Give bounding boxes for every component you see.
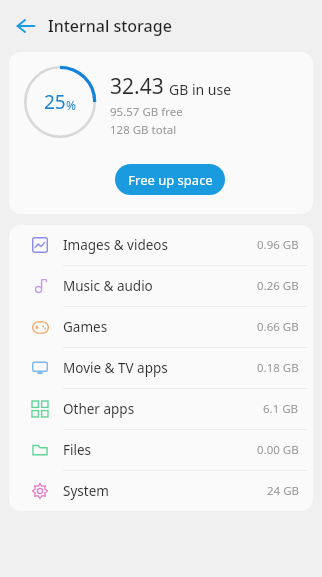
staticText: System (63, 482, 109, 500)
staticText: 0.66 GB (257, 319, 299, 335)
button[interactable]: System (9, 471, 313, 511)
staticText: 6.1 GB (263, 401, 299, 417)
button[interactable]: Movie & TV apps (9, 348, 313, 388)
staticText: 95.57 GB free (110, 104, 183, 120)
staticText: Internal storage (48, 15, 172, 37)
staticText: Music & audio (63, 277, 153, 295)
staticText: 0.26 GB (257, 278, 299, 294)
button[interactable]: Images & videos (9, 225, 313, 265)
staticText: 25 (44, 89, 66, 115)
staticText: 0.96 GB (257, 237, 299, 253)
staticText: Other apps (63, 400, 135, 418)
button[interactable]: Games (9, 307, 313, 347)
button[interactable]: Other apps (9, 389, 313, 429)
staticText: 24 GB (267, 483, 299, 499)
staticText: Movie & TV apps (63, 359, 168, 377)
staticText: Files (63, 441, 92, 459)
staticText: GB in use (169, 80, 232, 99)
staticText: % (66, 97, 76, 113)
staticText: 32.43 (110, 72, 164, 101)
button[interactable]: Music & audio (9, 266, 313, 306)
staticText: 128 GB total (110, 122, 177, 138)
button[interactable]: Files (9, 430, 313, 470)
button[interactable]: Free up space (115, 164, 225, 195)
staticText: Games (63, 318, 108, 336)
button[interactable]: Back (10, 10, 42, 42)
staticText: Images & videos (63, 236, 168, 254)
staticText: Free up space (128, 171, 213, 189)
staticText: 0.18 GB (257, 360, 299, 376)
staticText: 0.00 GB (257, 442, 299, 458)
